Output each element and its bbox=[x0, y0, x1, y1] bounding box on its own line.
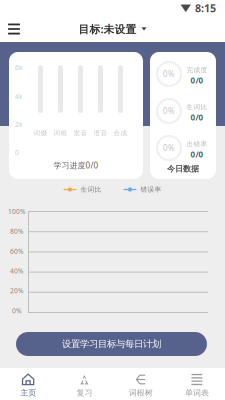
button[interactable]: Menu bbox=[0, 16, 28, 41]
staticText: 发音 bbox=[73, 129, 87, 137]
staticText: 主页 bbox=[20, 388, 36, 398]
staticText: 错误率 bbox=[140, 185, 161, 194]
button[interactable]: 词根树 bbox=[112, 368, 169, 400]
staticText: 生词比 bbox=[186, 103, 207, 111]
staticText: 100% bbox=[8, 207, 26, 216]
button[interactable]: 单词表 bbox=[169, 368, 225, 400]
staticText: 今日数据 bbox=[167, 164, 199, 174]
button[interactable]: 复习 bbox=[56, 368, 112, 400]
staticText: 词缀 bbox=[33, 129, 47, 137]
staticText: 设置学习目标与每日计划 bbox=[62, 338, 161, 350]
staticText: 0/0 bbox=[190, 75, 203, 86]
staticText: 40% bbox=[10, 266, 24, 275]
staticText: 学习进度0/0 bbox=[53, 160, 98, 171]
staticText: 目标:未设置 bbox=[78, 22, 136, 36]
staticText: 生词比 bbox=[80, 185, 101, 194]
staticText: 0% bbox=[163, 143, 175, 153]
staticText: 0% bbox=[163, 69, 175, 79]
staticText: 单词表 bbox=[185, 388, 209, 398]
button[interactable]: 设置学习目标与每日计划 bbox=[16, 332, 207, 356]
staticText: 20% bbox=[10, 286, 24, 295]
staticText: 复习 bbox=[76, 388, 92, 398]
staticText: 0% bbox=[163, 106, 175, 116]
button[interactable]: 主页 bbox=[0, 368, 56, 400]
staticText: 词根 bbox=[53, 129, 67, 137]
staticText: 0 bbox=[15, 148, 19, 157]
staticText: 0% bbox=[12, 306, 22, 315]
staticText: 4k bbox=[15, 92, 23, 101]
staticText: 60% bbox=[10, 247, 24, 256]
staticText: 语音 bbox=[93, 129, 107, 137]
staticText: 8:15 bbox=[195, 1, 216, 15]
staticText: 词根树 bbox=[129, 388, 153, 398]
staticText: 完成度 bbox=[186, 66, 207, 74]
staticText: 出错率 bbox=[186, 140, 207, 148]
button[interactable]: 目标:未设置 bbox=[78, 17, 146, 41]
staticText: 2k bbox=[15, 120, 23, 129]
staticText: 合成 bbox=[113, 129, 127, 137]
staticText: 0/0 bbox=[190, 149, 203, 160]
staticText: 80% bbox=[10, 227, 24, 236]
staticText: 6k bbox=[15, 63, 23, 72]
staticText: 0/0 bbox=[190, 112, 203, 123]
